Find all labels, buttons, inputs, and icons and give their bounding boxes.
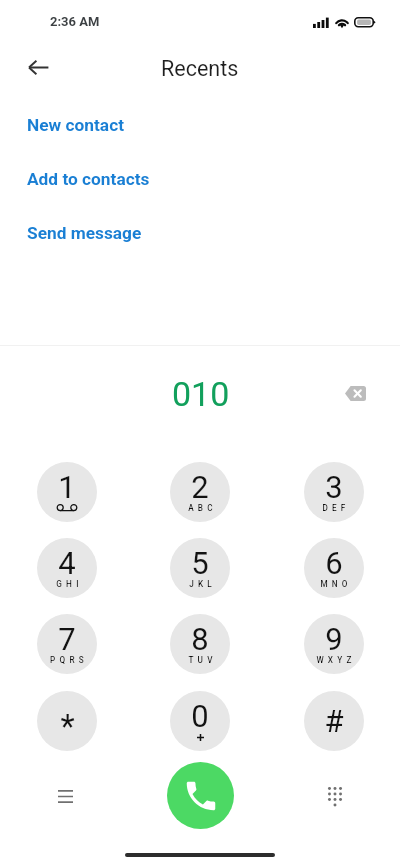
staticText: GHI — [56, 579, 83, 589]
staticText: TUV — [188, 655, 217, 665]
staticText: 7 — [58, 621, 76, 657]
button[interactable]: 2 — [170, 462, 230, 522]
staticText: ABC — [188, 503, 217, 513]
button[interactable]: Send message — [0, 206, 400, 260]
staticText: New contact — [27, 115, 124, 135]
button[interactable]: 4 — [37, 538, 97, 598]
staticText: 4 — [58, 545, 76, 581]
button[interactable]: New contact — [0, 98, 400, 152]
button[interactable]: 6 — [304, 538, 364, 598]
staticText: 1 — [58, 469, 76, 505]
staticText: 5 — [191, 545, 209, 581]
button[interactable]: Call — [167, 762, 234, 829]
button[interactable]: Backspace — [333, 371, 377, 415]
staticText: # — [324, 703, 344, 739]
staticText: Recents — [161, 56, 239, 81]
staticText: MNO — [320, 579, 352, 589]
button[interactable]: 8 — [170, 614, 230, 674]
button[interactable]: 1 — [37, 462, 97, 522]
staticText: Send message — [27, 223, 142, 243]
staticText: 2 — [191, 469, 209, 505]
button[interactable]: Back — [14, 43, 62, 91]
staticText: DEF — [322, 503, 350, 513]
staticText: WXYZ — [316, 655, 356, 665]
button[interactable]: * — [37, 691, 97, 751]
button[interactable]: 0 — [170, 691, 230, 751]
button[interactable]: Dialpad — [311, 772, 359, 820]
staticText: 2:36 AM — [50, 14, 100, 29]
staticText: PQRS — [50, 655, 88, 665]
button[interactable]: 7 — [37, 614, 97, 674]
button[interactable]: 5 — [170, 538, 230, 598]
staticText: Add to contacts — [27, 169, 150, 189]
button[interactable]: 9 — [304, 614, 364, 674]
staticText: 3 — [325, 469, 343, 505]
staticText: 9 — [325, 621, 343, 657]
button[interactable]: Add to contacts — [0, 152, 400, 206]
button[interactable]: # — [304, 691, 364, 751]
button[interactable]: Menu — [41, 772, 89, 820]
staticText: 0 — [191, 698, 209, 734]
staticText: 8 — [191, 621, 209, 657]
staticText: 6 — [325, 545, 343, 581]
button[interactable]: 3 — [304, 462, 364, 522]
staticText: JKL — [189, 579, 216, 589]
staticText: * — [60, 707, 75, 746]
staticText: 010 — [172, 374, 230, 414]
